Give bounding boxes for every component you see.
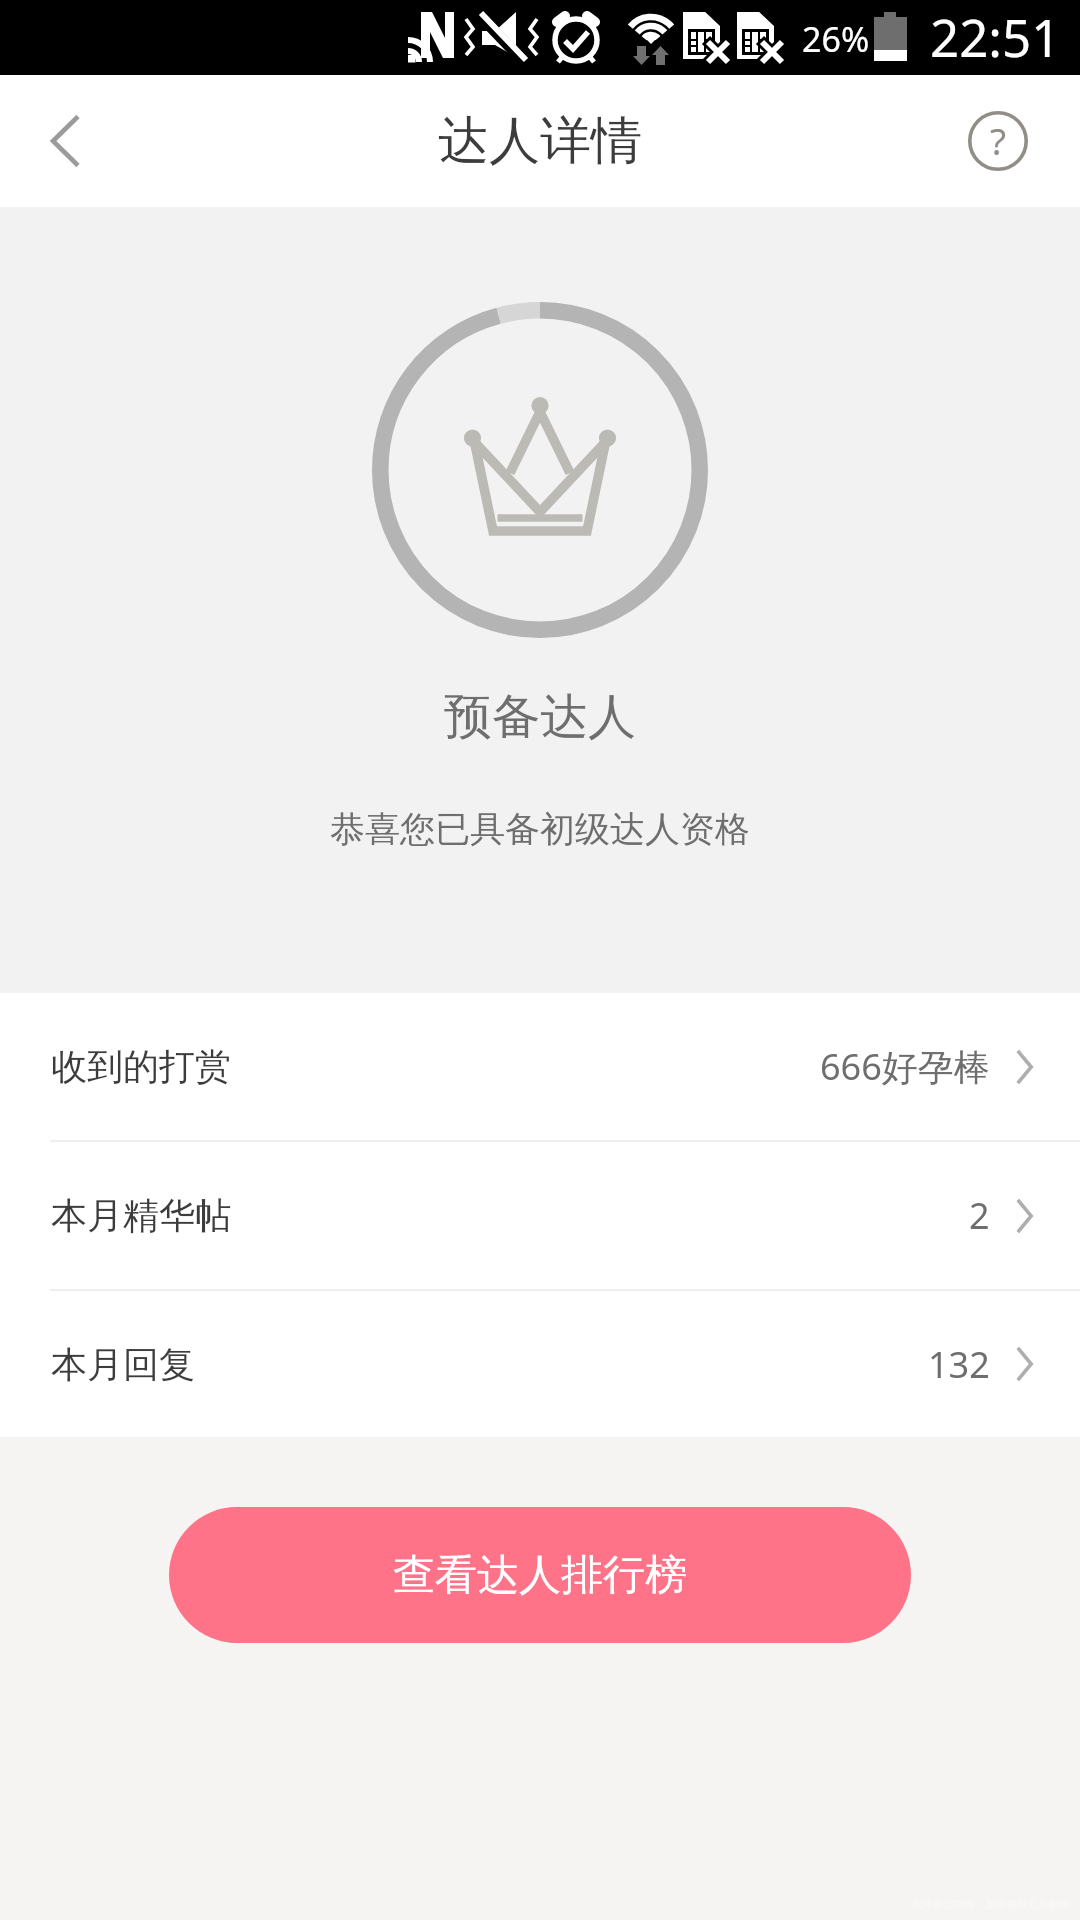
button[interactable]: Back: [0, 75, 130, 207]
staticText: 2: [969, 1191, 990, 1240]
staticText: 预备达人: [444, 687, 636, 747]
staticText: 22:51: [930, 2, 1061, 71]
staticText: 查看达人排行榜: [393, 1549, 687, 1602]
staticText: 666好孕棒: [820, 1042, 990, 1091]
staticText: 恭喜您已具备初级达人资格: [330, 807, 750, 851]
button[interactable]: 收到的打赏: [0, 993, 1080, 1140]
staticText: 26%: [802, 16, 870, 62]
staticText: ?: [990, 115, 1007, 165]
staticText: 收到的打赏: [51, 1044, 231, 1089]
button[interactable]: 本月回复: [0, 1291, 1080, 1437]
staticText: 本月回复: [51, 1342, 195, 1387]
button[interactable]: Help: [968, 111, 1028, 171]
staticText: 132: [928, 1340, 990, 1389]
staticText: 达人详情: [438, 109, 642, 173]
button[interactable]: 本月精华帖: [0, 1142, 1080, 1289]
button[interactable]: 查看达人排行榜: [169, 1507, 911, 1643]
staticText: 本月精华帖: [51, 1193, 231, 1238]
